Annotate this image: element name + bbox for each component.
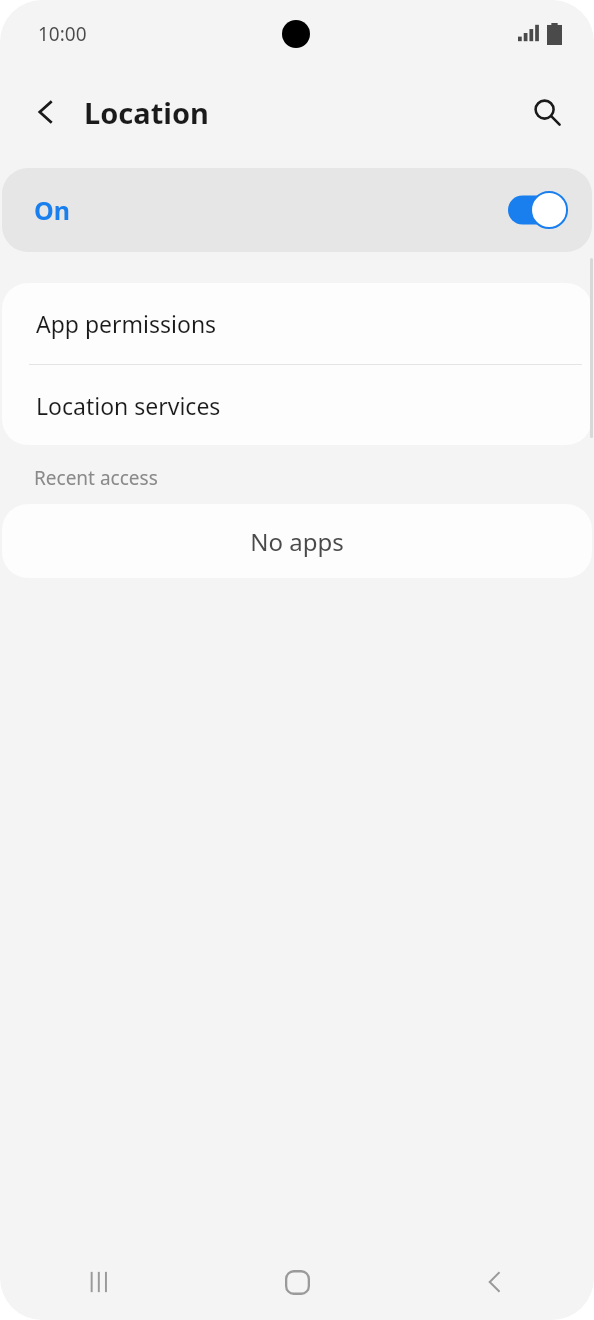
staticText: Location services — [36, 390, 221, 421]
staticText: No apps — [250, 525, 344, 558]
staticText: App permissions — [36, 308, 217, 339]
button[interactable]: On — [2, 168, 592, 252]
button[interactable]: Recent apps — [0, 1244, 198, 1320]
button[interactable]: App permissions — [2, 283, 592, 364]
staticText: 10:00 — [38, 21, 87, 47]
button[interactable]: Back — [18, 84, 74, 140]
button[interactable]: Back — [396, 1244, 594, 1320]
staticText: Location — [84, 93, 209, 132]
button[interactable]: Home — [198, 1244, 396, 1320]
staticText: On — [34, 193, 71, 227]
button[interactable]: Search — [519, 84, 575, 140]
button[interactable]: Location services — [2, 365, 592, 445]
staticText: Recent access — [34, 465, 158, 491]
